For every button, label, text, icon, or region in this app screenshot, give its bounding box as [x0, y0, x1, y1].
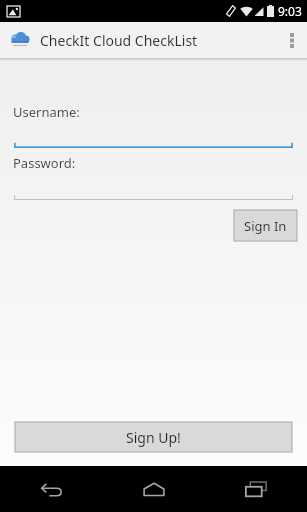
button[interactable]: Home — [103, 466, 205, 512]
button[interactable]: More options — [277, 22, 307, 58]
button[interactable] — [14, 140, 293, 148]
staticText: Sign In — [244, 217, 287, 235]
staticText: CheckIt Cloud CheckList — [40, 31, 198, 50]
button[interactable] — [14, 192, 293, 200]
button[interactable]: Sign In — [234, 210, 297, 241]
button[interactable]: Sign Up! — [15, 422, 292, 452]
staticText: Username: — [13, 103, 80, 121]
staticText: Password: — [13, 154, 76, 172]
button[interactable]: Back — [0, 466, 103, 512]
staticText: 9:03 — [278, 3, 302, 19]
button[interactable]: Recent apps — [205, 466, 307, 512]
staticText: Sign Up! — [126, 428, 181, 447]
